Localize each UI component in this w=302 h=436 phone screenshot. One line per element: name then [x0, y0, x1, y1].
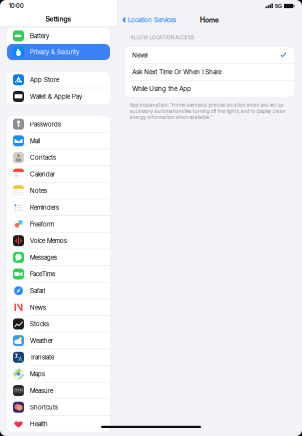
staticText: Reminders [30, 204, 59, 211]
staticText: Location Services [128, 16, 176, 24]
staticText: Passwords [30, 120, 61, 128]
button[interactable]: Messages [7, 249, 110, 265]
button[interactable]: Translate [7, 349, 110, 365]
staticText: While Using the App [132, 85, 191, 93]
button[interactable]: Measure [7, 382, 110, 399]
staticText: Calendar [30, 170, 55, 178]
button[interactable]: Wallet & Apple Pay [7, 88, 110, 104]
button[interactable]: Mail [7, 133, 110, 149]
button[interactable]: Shortcuts [7, 399, 110, 415]
staticText: Wallet & Apple Pay [30, 93, 82, 100]
staticText: Messages [30, 253, 57, 261]
button[interactable]: Never [125, 47, 294, 63]
staticText: Shortcuts [30, 403, 58, 411]
staticText: Health [30, 420, 48, 428]
staticText: Voice Memos [30, 237, 67, 245]
button[interactable]: Passwords [7, 116, 110, 132]
button[interactable]: Calendar [7, 166, 110, 182]
staticText: Home [200, 16, 219, 24]
staticText: 5G [275, 3, 282, 9]
staticText: Measure [30, 387, 53, 394]
staticText: Settings [45, 15, 71, 23]
button[interactable]: Stocks [7, 316, 110, 332]
staticText: App Store [30, 76, 59, 84]
staticText: Ask Next Time Or When I Share [132, 68, 221, 76]
staticText: Privacy & Security [30, 48, 79, 56]
button[interactable]: While Using the App [125, 81, 294, 97]
button[interactable]: Battery [7, 28, 110, 44]
staticText: Translate [30, 353, 54, 361]
staticText: Weather [30, 337, 53, 344]
button[interactable]: Safari [7, 283, 110, 299]
staticText: Contacts [30, 154, 56, 161]
button[interactable]: Notes [7, 183, 110, 199]
staticText: News [30, 303, 46, 311]
staticText: Maps [30, 370, 45, 378]
staticText: Notes [30, 187, 47, 195]
button[interactable]: Privacy & Security [7, 44, 110, 60]
button[interactable]: News [7, 299, 110, 315]
button[interactable]: Maps [7, 366, 110, 382]
staticText: Safari [30, 287, 45, 294]
button[interactable]: Location Services [117, 16, 176, 24]
staticText: Never [132, 51, 148, 59]
button[interactable]: App Store [7, 72, 110, 88]
button[interactable]: Freeform [7, 216, 110, 232]
staticText: Battery [30, 32, 49, 40]
button[interactable]: Voice Memos [7, 233, 110, 249]
button[interactable]: Reminders [7, 199, 110, 215]
staticText: App explanation: “Home uses your precise… [129, 102, 285, 120]
staticText: 10:00 [9, 3, 24, 9]
staticText: Freeform [30, 220, 54, 228]
staticText: Mail [30, 137, 40, 145]
button[interactable]: Ask Next Time Or When I Share [125, 64, 294, 80]
button[interactable]: FaceTime [7, 266, 110, 282]
button[interactable]: Health [7, 416, 110, 432]
staticText: FaceTime [30, 270, 55, 278]
staticText: Stocks [30, 320, 49, 328]
button[interactable]: Weather [7, 333, 110, 349]
button[interactable]: Contacts [7, 149, 110, 165]
staticText: ALLOW LOCATION ACCESS [130, 35, 194, 40]
